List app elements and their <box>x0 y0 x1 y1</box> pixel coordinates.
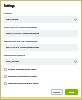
staticText: chat_stream <box>6 60 20 63</box>
button[interactable]: Enable intermediate Steps <box>4 67 78 72</box>
button[interactable]: Override Intermediate Steps <box>4 81 78 86</box>
staticText: http://127.0.0.1:8000/generate <box>6 32 40 35</box>
staticText: Light mode <box>6 18 19 21</box>
staticText: WebSocket Schema <box>4 54 26 57</box>
staticText: Expand intermediate Steps <box>8 75 38 78</box>
staticText: Save <box>69 91 75 94</box>
staticText: Cancel <box>53 91 61 94</box>
staticText: Theme <box>4 12 12 15</box>
button[interactable]: http://127.0.0.1:8000/generate <box>4 30 78 37</box>
staticText: Light mode <box>6 18 19 21</box>
staticText: Enable intermediate Steps <box>8 68 37 71</box>
staticText: Theme <box>4 12 12 15</box>
staticText: Enable intermediate Steps <box>8 68 37 71</box>
staticText: Settings <box>4 4 15 8</box>
staticText: Enable intermediate Steps <box>8 68 37 71</box>
staticText: HTTP URL for Chat Completion <box>4 26 38 29</box>
button[interactable]: Light mode <box>4 16 78 23</box>
button[interactable]: Expand intermediate Steps <box>4 74 78 79</box>
staticText: http://127.0.0.1:8000/generate <box>6 32 40 35</box>
staticText: Save <box>69 91 75 94</box>
staticText: WebSocket URL for Completion <box>4 40 38 43</box>
staticText: chat_stream <box>6 60 20 63</box>
staticText: http://127.0.0.1:8000/generate <box>6 32 40 35</box>
staticText: WebSocket Schema <box>4 54 26 57</box>
staticText: Theme <box>4 12 12 15</box>
staticText: ws://127.0.0.1:8000/websocket <box>6 46 40 49</box>
button[interactable]: Save <box>65 89 78 95</box>
staticText: Expand intermediate Steps <box>8 75 38 78</box>
staticText: Cancel <box>53 91 61 94</box>
staticText: Settings <box>4 4 15 8</box>
staticText: Light mode <box>6 18 19 21</box>
staticText: Override Intermediate Steps <box>8 82 39 85</box>
staticText: Settings <box>4 4 15 8</box>
staticText: WebSocket URL for Completion <box>4 40 38 43</box>
button[interactable]: ws://127.0.0.1:8000/websocket <box>4 44 78 51</box>
button[interactable]: Cancel <box>51 89 63 95</box>
staticText: Cancel <box>53 91 61 94</box>
staticText: Override Intermediate Steps <box>8 82 39 85</box>
staticText: ws://127.0.0.1:8000/websocket <box>6 46 40 49</box>
staticText: HTTP URL for Chat Completion <box>4 26 38 29</box>
button[interactable]: chat_stream <box>4 58 78 65</box>
staticText: Save <box>69 91 75 94</box>
staticText: Settings <box>4 4 15 8</box>
staticText: WebSocket Schema <box>4 54 26 57</box>
staticText: HTTP URL for Chat Completion <box>4 26 38 29</box>
staticText: ws://127.0.0.1:8000/websocket <box>6 46 40 49</box>
staticText: WebSocket URL for Completion <box>4 40 38 43</box>
staticText: Expand intermediate Steps <box>8 75 38 78</box>
staticText: Override Intermediate Steps <box>8 82 39 85</box>
staticText: chat_stream <box>6 60 20 63</box>
